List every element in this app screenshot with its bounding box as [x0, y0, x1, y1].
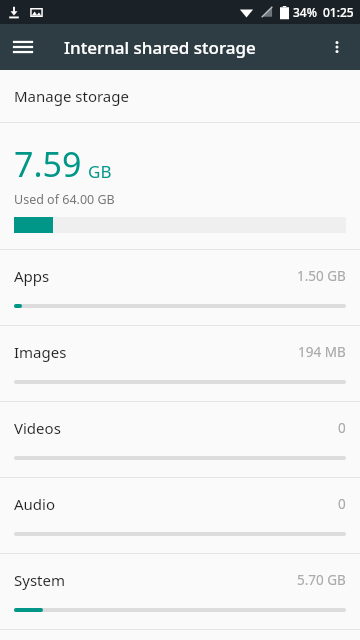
staticText: 5.70 GB [297, 571, 346, 589]
staticText: 34% [293, 4, 317, 20]
button[interactable]: More options [314, 24, 360, 70]
button[interactable]: Manage storage [0, 70, 360, 122]
staticText: 7.59 [14, 141, 82, 187]
staticText: Images [14, 342, 67, 362]
staticText: GB [88, 160, 112, 183]
staticText: Audio [14, 494, 56, 514]
staticText: System [14, 570, 65, 590]
staticText: Internal shared storage [64, 36, 256, 59]
button[interactable]: Audio [0, 478, 360, 553]
staticText: Manage storage [14, 86, 129, 106]
button[interactable]: Open navigation drawer [0, 24, 46, 70]
staticText: 0 [338, 495, 346, 513]
button[interactable]: Videos [0, 402, 360, 477]
button[interactable]: Images [0, 326, 360, 401]
staticText: 1.50 GB [297, 267, 346, 285]
button[interactable]: System [0, 554, 360, 629]
staticText: 01:25 [323, 4, 354, 20]
staticText: Apps [14, 266, 50, 286]
button[interactable]: Apps [0, 250, 360, 325]
staticText: 194 MB [298, 343, 346, 361]
staticText: Used of 64.00 GB [14, 191, 115, 208]
staticText: Videos [14, 418, 61, 438]
staticText: 0 [338, 419, 346, 437]
